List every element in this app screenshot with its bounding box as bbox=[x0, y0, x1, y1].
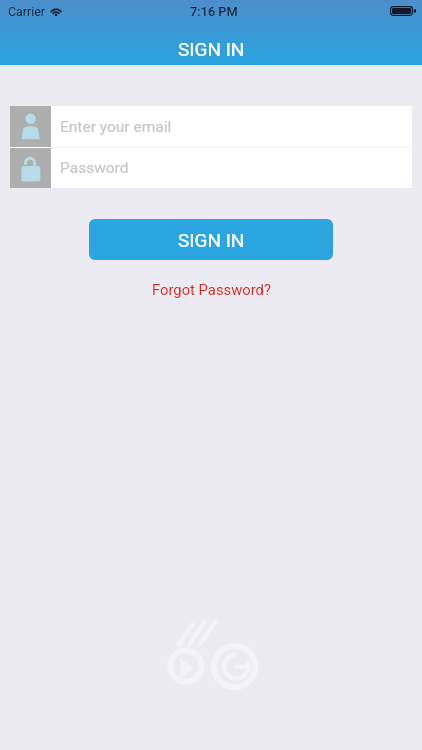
staticText: SIGN IN bbox=[178, 229, 245, 251]
staticText: Carrier bbox=[8, 4, 45, 19]
button[interactable]: Forgot Password? bbox=[142, 276, 281, 303]
other: Wi-Fi signal bbox=[50, 7, 62, 16]
button[interactable]: User bbox=[10, 106, 412, 147]
staticText: Forgot Password? bbox=[152, 281, 271, 298]
button[interactable]: Password bbox=[10, 148, 412, 188]
staticText: SIGN IN bbox=[178, 38, 245, 60]
other: Password bbox=[10, 148, 51, 188]
other: User bbox=[10, 106, 51, 147]
staticText: Password bbox=[60, 159, 129, 177]
other: Battery full bbox=[390, 6, 416, 16]
staticText: 7:16 PM bbox=[190, 4, 238, 19]
staticText: Enter your email bbox=[60, 118, 172, 136]
button[interactable]: SIGN IN bbox=[89, 219, 333, 260]
